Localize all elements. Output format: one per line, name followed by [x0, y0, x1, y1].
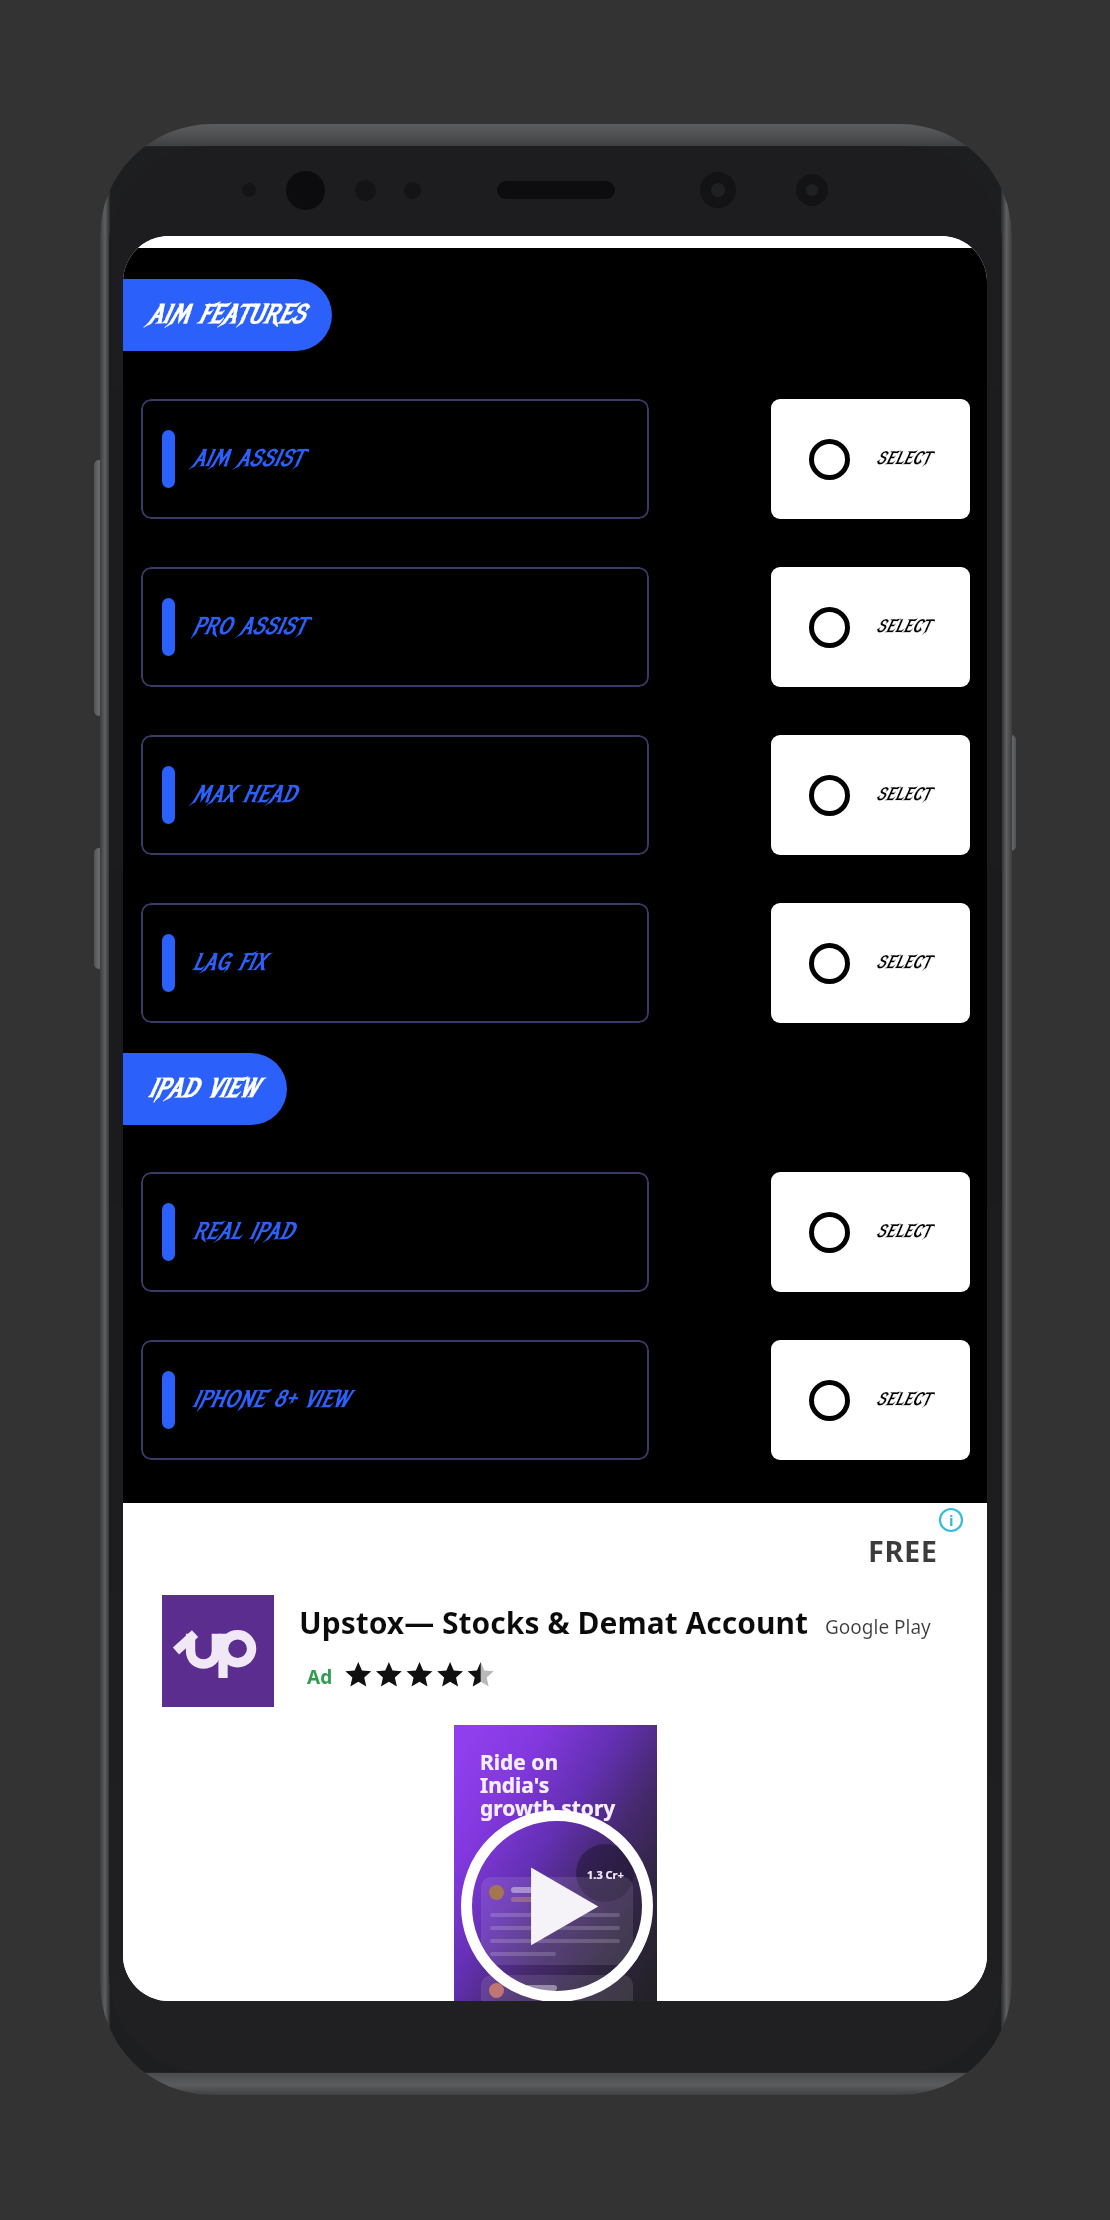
staticText: IPHONE 8+ VIEW	[192, 1384, 348, 1414]
button[interactable]: AIM FEATURES	[123, 279, 332, 351]
staticText: Upstox— Stocks & Demat Account	[299, 1602, 808, 1643]
staticText: SELECT	[876, 783, 930, 805]
staticText: Google Play	[825, 1614, 931, 1640]
staticText: 1.3 Cr+	[587, 1867, 624, 1882]
staticText: MAX HEAD	[192, 779, 296, 809]
staticText: IPAD VIEW	[148, 1072, 257, 1105]
button[interactable]: SELECT	[771, 1172, 970, 1292]
staticText: AIM FEATURES	[148, 298, 305, 331]
staticText: Ad	[307, 1664, 333, 1690]
button[interactable]: SELECT	[771, 903, 970, 1023]
button[interactable]: SELECT	[771, 399, 970, 519]
staticText: LAG FIX	[192, 947, 265, 977]
staticText: SELECT	[876, 615, 930, 637]
button[interactable]: Play video	[461, 1810, 653, 2001]
button[interactable]: SELECT	[771, 735, 970, 855]
button[interactable]: MAX HEAD	[141, 735, 649, 855]
staticText: PRO ASSIST	[192, 611, 305, 641]
staticText: SELECT	[876, 1220, 930, 1242]
button[interactable]: AIM ASSIST	[141, 399, 649, 519]
staticText: SELECT	[876, 1388, 930, 1410]
button[interactable]: IPHONE 8+ VIEW	[141, 1340, 649, 1460]
button[interactable]: PRO ASSIST	[141, 567, 649, 687]
button[interactable]: SELECT	[771, 1340, 970, 1460]
staticText: Ride on India's growth story	[480, 1748, 616, 1822]
staticText: SELECT	[876, 447, 930, 469]
staticText: SELECT	[876, 951, 930, 973]
button[interactable]: Upstox app icon	[162, 1595, 274, 1707]
button[interactable]: REAL IPAD	[141, 1172, 649, 1292]
staticText: AIM ASSIST	[192, 443, 302, 473]
button[interactable]: Ride on India's growth story	[454, 1725, 657, 2001]
staticText: FREE	[868, 1531, 938, 1570]
staticText: REAL IPAD	[192, 1216, 294, 1246]
staticText: i	[949, 1510, 954, 1530]
button[interactable]: SELECT	[771, 567, 970, 687]
button[interactable]: IPAD VIEW	[123, 1053, 287, 1125]
button[interactable]: Ad information	[939, 1508, 963, 1532]
button[interactable]: LAG FIX	[141, 903, 649, 1023]
